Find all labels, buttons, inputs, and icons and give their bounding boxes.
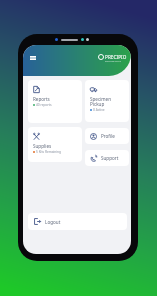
staticText: 40 reports <box>36 103 52 107</box>
button[interactable]: Logout <box>28 213 127 230</box>
button[interactable]: Menu <box>27 52 39 64</box>
staticText: Logout <box>45 219 61 225</box>
button[interactable]: Support <box>85 150 129 166</box>
staticText: Support <box>101 155 119 161</box>
staticText: DIAGNOSTICS <box>105 60 122 62</box>
staticText: 5 Kits Remaining <box>36 150 62 154</box>
button[interactable]: Supplies <box>28 127 82 162</box>
button[interactable]: Profile <box>85 128 129 144</box>
button[interactable]: Reports <box>28 80 82 123</box>
staticText: Specimen Pickup <box>90 96 112 107</box>
staticText: Reports <box>33 96 50 102</box>
staticText: Supplies <box>33 143 52 149</box>
staticText: PRECIPIO <box>105 54 127 60</box>
button[interactable]: Specimen Pickup <box>85 80 129 122</box>
staticText: Profile <box>101 133 115 139</box>
staticText: 0 Active <box>93 108 105 112</box>
